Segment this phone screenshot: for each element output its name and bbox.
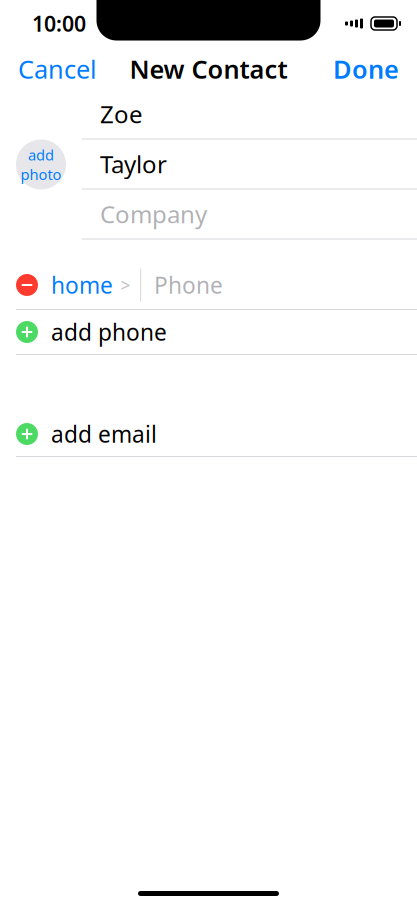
staticText: Company <box>100 198 207 230</box>
staticText: home <box>51 270 113 300</box>
button[interactable]: Cancel <box>0 47 115 91</box>
staticText: 10:00 <box>32 9 86 38</box>
button[interactable]: add phone <box>0 310 417 355</box>
staticText: add email <box>51 419 157 449</box>
button[interactable]: add email <box>0 412 417 457</box>
staticText: add <box>28 145 54 164</box>
staticText: Phone <box>154 270 223 300</box>
staticText: Cancel <box>18 52 97 86</box>
staticText: > <box>120 273 130 296</box>
button[interactable]: Done <box>315 47 417 91</box>
staticText: add phone <box>51 317 167 347</box>
staticText: New Contact <box>129 52 287 86</box>
button[interactable]: add <box>16 139 66 189</box>
button[interactable]: home <box>0 261 417 310</box>
staticText: Done <box>333 52 399 86</box>
staticText: Zoe <box>100 98 143 130</box>
staticText: photo <box>20 164 61 184</box>
staticText: Taylor <box>100 148 167 180</box>
button[interactable]: Company <box>82 189 417 239</box>
button[interactable]: Taylor <box>82 139 417 189</box>
button[interactable]: Zoe <box>82 89 417 139</box>
